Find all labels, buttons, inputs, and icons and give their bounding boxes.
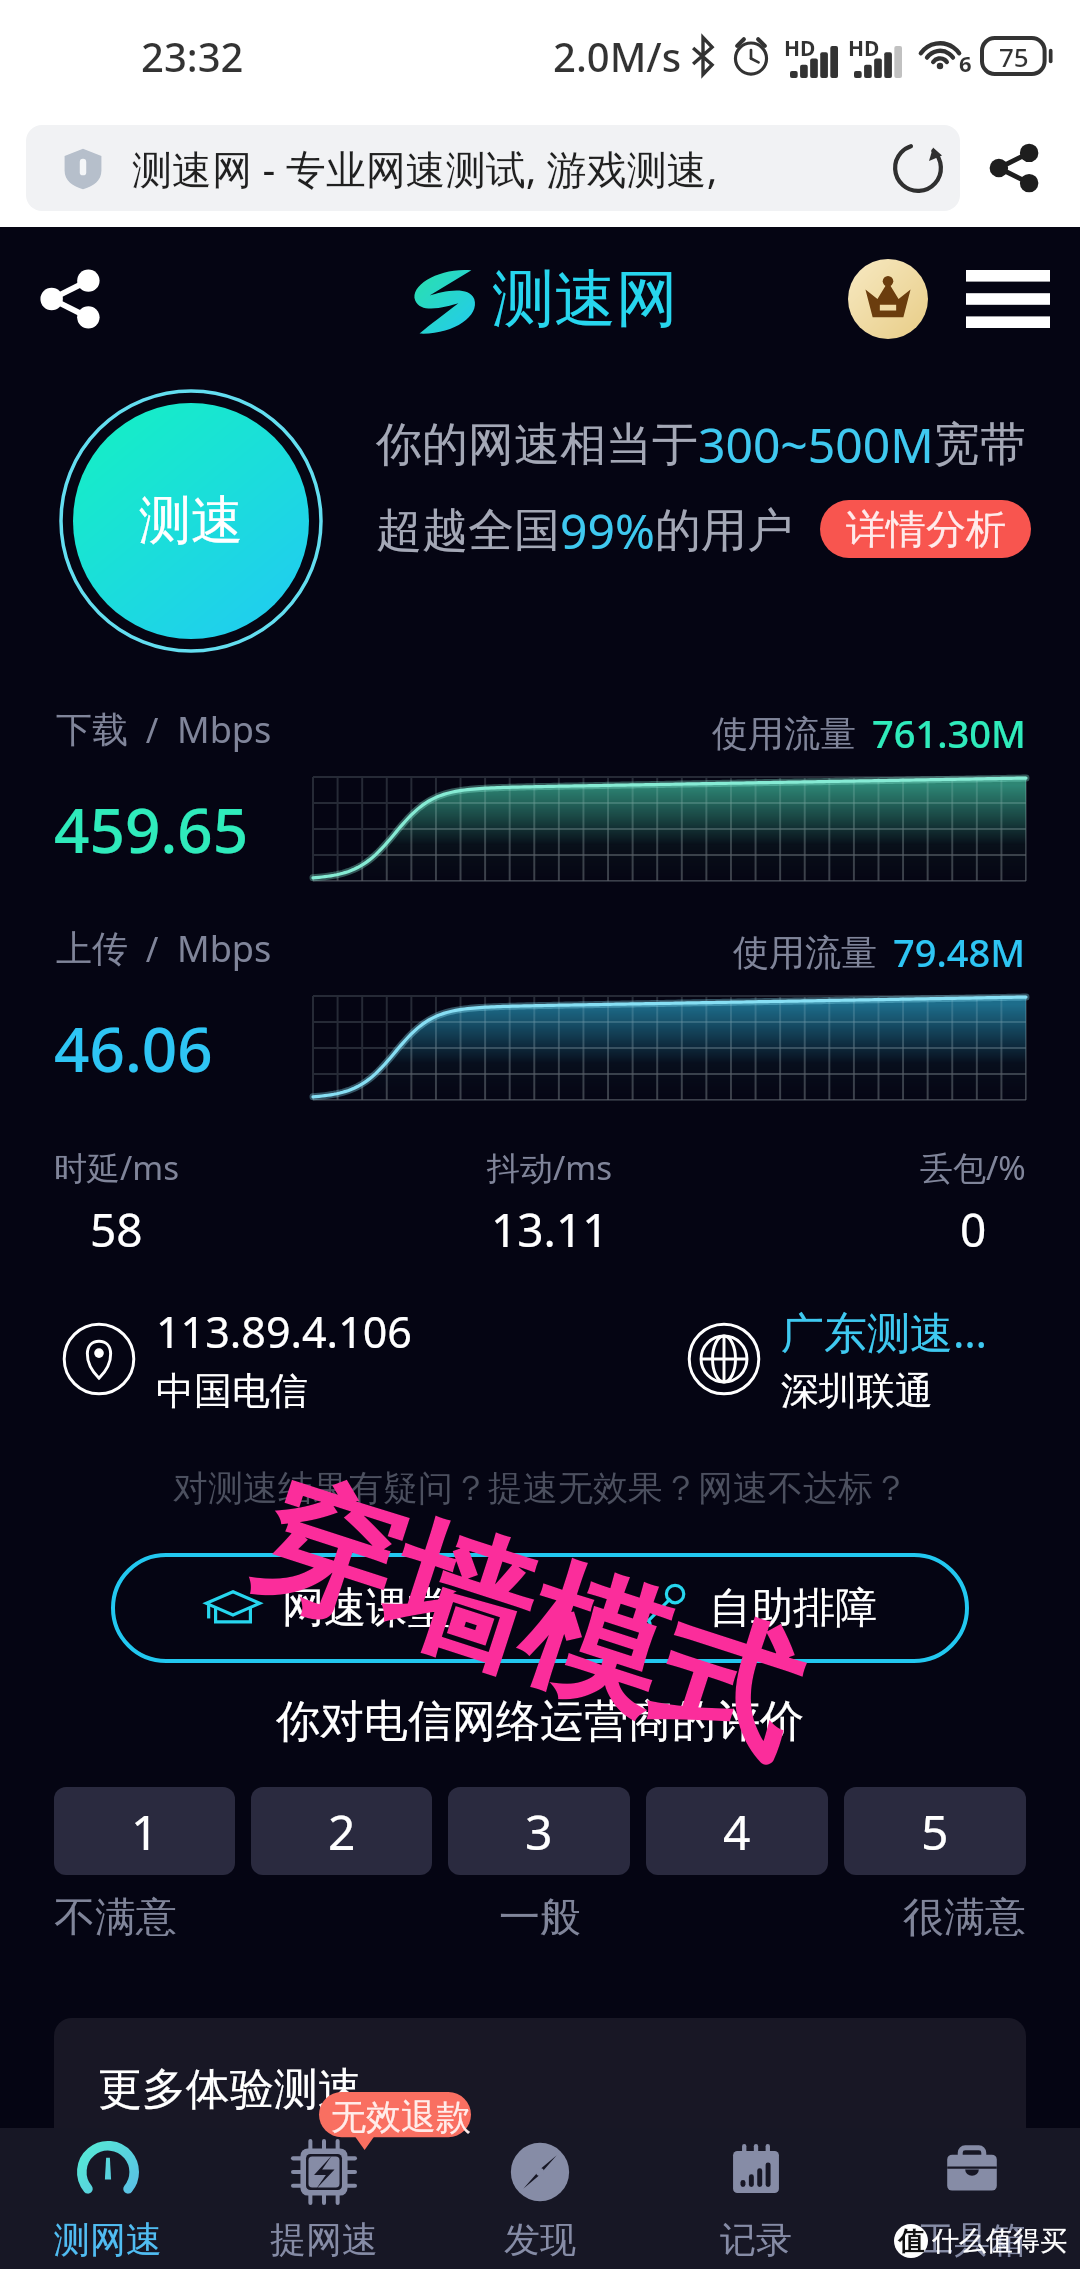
staticText: 58 — [90, 1198, 143, 1261]
staticText: 761.30M — [872, 707, 1026, 759]
button[interactable]: 发现 — [432, 2128, 648, 2269]
staticText: 测速 — [139, 488, 243, 554]
staticText: 46.06 — [54, 1006, 213, 1090]
staticText: 3 — [525, 1799, 553, 1864]
staticText: 广东测速… — [781, 1302, 988, 1361]
staticText: 5 — [921, 1799, 949, 1864]
staticText: 使用流量 — [712, 711, 856, 756]
staticText: 对测速结果有疑问？提速无效果？网速不达标？ — [173, 1466, 908, 1510]
staticText: 你的网速相当于 — [376, 416, 698, 474]
staticText: Mbps — [177, 705, 272, 754]
staticText: 使用流量 — [733, 930, 877, 975]
staticText: 测速网 - 专业网速测试, 游戏测速, — [132, 141, 718, 196]
staticText: 时延/ms — [54, 1145, 179, 1190]
staticText: 6 — [959, 48, 972, 78]
button[interactable]: 更多体验测速 — [54, 2018, 1026, 2248]
staticText: 工具箱 — [918, 2217, 1026, 2262]
staticText: 79.48M — [893, 926, 1026, 978]
staticText: 中国电信 — [156, 1367, 308, 1415]
staticText: 上传 — [56, 926, 128, 971]
staticText: 99% — [560, 498, 655, 563]
button[interactable]: 工具箱 — [864, 2128, 1080, 2269]
button[interactable]: 1 — [54, 1787, 235, 1875]
staticText: 什么值得买 — [932, 2224, 1067, 2258]
staticText: 不满意 — [54, 1892, 378, 1944]
staticText: 丢包/% — [920, 1145, 1026, 1190]
button[interactable]: Menu — [966, 257, 1050, 341]
button[interactable]: 提网速 — [216, 2128, 432, 2269]
staticText: HD — [784, 34, 816, 63]
button[interactable]: 测网速 — [0, 2128, 216, 2269]
staticText: 1 — [131, 1799, 159, 1864]
staticText: 自助排障 — [709, 1582, 877, 1635]
staticText: 300~500M — [698, 412, 934, 477]
button[interactable]: 自助排障 — [540, 1555, 967, 1661]
button[interactable]: 网速课堂 — [113, 1555, 540, 1661]
staticText: 75 — [999, 39, 1029, 74]
staticText: 13.11 — [491, 1198, 609, 1261]
button[interactable]: 3 — [448, 1787, 630, 1875]
button[interactable]: VIP — [848, 259, 928, 339]
button[interactable]: Reload — [880, 130, 956, 206]
staticText: 记录 — [720, 2217, 792, 2262]
staticText: 113.89.4.106 — [156, 1302, 412, 1361]
staticText: 2.0M/s — [553, 29, 682, 83]
staticText: Mbps — [177, 924, 272, 973]
staticText: 提网速 — [270, 2217, 378, 2262]
staticText: 更多体验测速 — [98, 2062, 362, 2117]
staticText: 超越全国 — [376, 502, 560, 560]
button[interactable]: 4 — [646, 1787, 828, 1875]
staticText: 一般 — [378, 1892, 702, 1944]
staticText: 0 — [960, 1198, 987, 1261]
staticText: / — [128, 926, 177, 972]
staticText: 宽带 — [934, 416, 1026, 474]
staticText: 459.65 — [54, 787, 249, 871]
staticText: 无效退款 — [331, 2095, 471, 2139]
staticText: 发现 — [504, 2217, 576, 2262]
staticText: 2 — [328, 1799, 356, 1864]
staticText: 测速网 — [492, 260, 678, 338]
staticText: 深圳联通 — [781, 1367, 933, 1415]
staticText: 穿墙模式 — [233, 1451, 820, 1791]
button[interactable]: Share page — [974, 128, 1054, 208]
button[interactable]: 测速 — [59, 389, 323, 653]
staticText: 详情分析 — [846, 504, 1006, 554]
staticText: 值 — [898, 2225, 924, 2258]
staticText: 的用户 — [655, 502, 793, 560]
staticText: 你对电信网络运营商的评价 — [276, 1694, 804, 1749]
staticText: 23:32 — [141, 29, 244, 83]
button[interactable]: 记录 — [648, 2128, 864, 2269]
staticText: 测网速 — [54, 2217, 162, 2262]
button[interactable]: 详情分析 — [820, 500, 1031, 558]
button[interactable]: 广东测速… — [687, 1302, 988, 1415]
staticText: 4 — [723, 1799, 751, 1864]
button[interactable]: 2 — [251, 1787, 432, 1875]
staticText: HD — [848, 34, 880, 63]
button[interactable]: 113.89.4.106 — [62, 1302, 687, 1415]
staticText: 抖动/ms — [487, 1145, 612, 1190]
staticText: / — [128, 707, 177, 753]
button[interactable]: 5 — [844, 1787, 1026, 1875]
staticText: 下载 — [56, 707, 128, 752]
button[interactable]: 测速网 - 专业网速测试, 游戏测速, — [26, 125, 960, 211]
staticText: 网速课堂 — [282, 1582, 450, 1635]
button[interactable]: Share — [24, 253, 116, 345]
staticText: 很满意 — [702, 1892, 1026, 1944]
